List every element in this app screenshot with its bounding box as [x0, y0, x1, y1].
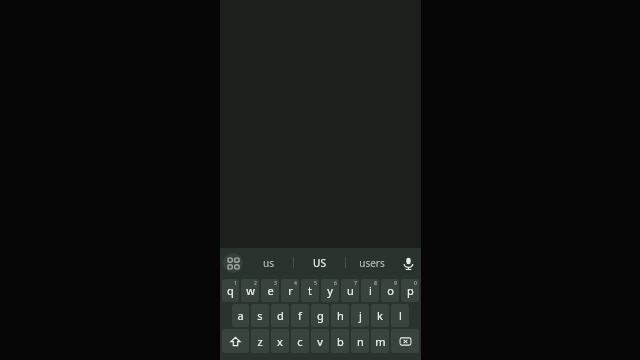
staticText: 2: [254, 280, 257, 287]
staticText: 7: [354, 280, 357, 287]
staticText: 9: [394, 280, 397, 287]
staticText: l: [399, 308, 402, 323]
staticText: q: [227, 283, 234, 298]
staticText: p: [407, 283, 414, 298]
button[interactable]: w: [241, 279, 259, 302]
staticText: US: [313, 256, 326, 270]
button[interactable]: g: [311, 304, 329, 327]
button[interactable]: v: [311, 329, 329, 353]
staticText: us: [263, 256, 274, 270]
button[interactable]: s: [251, 304, 269, 327]
button[interactable]: e: [261, 279, 279, 302]
button[interactable]: z: [251, 329, 269, 353]
staticText: j: [359, 308, 362, 323]
staticText: g: [317, 308, 324, 323]
staticText: w: [246, 283, 255, 298]
staticText: 0: [414, 280, 417, 287]
button[interactable]: users: [346, 248, 397, 277]
staticText: v: [317, 334, 323, 349]
staticText: r: [288, 283, 293, 298]
button[interactable]: i: [361, 279, 379, 302]
staticText: y: [327, 283, 333, 298]
button[interactable]: k: [371, 304, 389, 327]
button[interactable]: y: [321, 279, 339, 302]
button[interactable]: j: [351, 304, 369, 327]
staticText: 5: [314, 280, 317, 287]
button[interactable]: l: [391, 304, 409, 327]
button[interactable]: Voice input: [397, 252, 419, 274]
button[interactable]: c: [291, 329, 309, 353]
staticText: i: [369, 283, 372, 298]
staticText: n: [357, 334, 364, 349]
staticText: 8: [374, 280, 377, 287]
button[interactable]: o: [381, 279, 399, 302]
staticText: b: [337, 334, 344, 349]
button[interactable]: n: [351, 329, 369, 353]
staticText: o: [387, 283, 394, 298]
staticText: 4: [294, 280, 297, 287]
staticText: f: [298, 308, 302, 323]
staticText: m: [375, 334, 386, 349]
staticText: z: [257, 334, 263, 349]
staticText: t: [308, 283, 312, 298]
button[interactable]: t: [301, 279, 319, 302]
staticText: 6: [334, 280, 337, 287]
staticText: k: [377, 308, 383, 323]
staticText: e: [267, 283, 274, 298]
staticText: 1: [234, 280, 237, 287]
staticText: users: [359, 256, 385, 270]
button[interactable]: f: [291, 304, 309, 327]
button[interactable]: u: [341, 279, 359, 302]
button[interactable]: h: [331, 304, 349, 327]
staticText: a: [237, 308, 244, 323]
staticText: c: [297, 334, 303, 349]
button[interactable]: d: [271, 304, 289, 327]
button[interactable]: p: [401, 279, 419, 302]
button[interactable]: us: [243, 248, 293, 277]
button[interactable]: Backspace: [391, 329, 419, 353]
staticText: s: [257, 308, 263, 323]
button[interactable]: b: [331, 329, 349, 353]
button[interactable]: US: [294, 248, 345, 277]
button[interactable]: q: [222, 279, 239, 302]
button[interactable]: Shift: [222, 329, 249, 353]
button[interactable]: r: [281, 279, 299, 302]
button[interactable]: m: [371, 329, 389, 353]
staticText: 3: [274, 280, 277, 287]
button[interactable]: Switch input method: [223, 253, 243, 273]
staticText: h: [337, 308, 344, 323]
button[interactable]: a: [232, 304, 249, 327]
staticText: x: [277, 334, 283, 349]
staticText: d: [277, 308, 284, 323]
staticText: u: [347, 283, 354, 298]
button[interactable]: x: [271, 329, 289, 353]
